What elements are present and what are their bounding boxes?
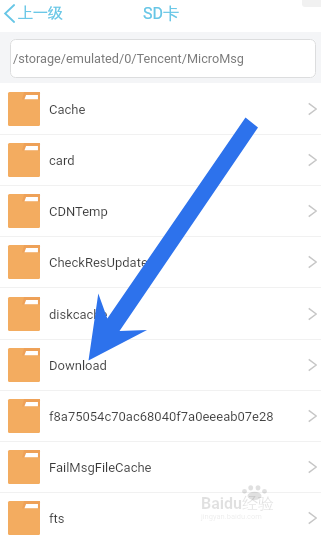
button[interactable]: fts xyxy=(0,493,321,539)
button[interactable]: 上一级 xyxy=(4,0,63,32)
staticText: fts xyxy=(49,511,308,526)
staticText: 上一级 xyxy=(18,4,63,23)
button[interactable]: /storage/emulated/0/Tencent/MicroMsg xyxy=(10,39,316,78)
staticText: Baidu经验 xyxy=(201,494,275,514)
staticText: Cache xyxy=(49,102,308,117)
button[interactable]: diskcache xyxy=(0,289,321,340)
staticText: /storage/emulated/0/Tencent/MicroMsg xyxy=(13,51,244,66)
button[interactable]: CDNTemp xyxy=(0,186,321,237)
button[interactable]: f8a75054c70ac68040f7a0eeeab07e28 xyxy=(0,391,321,442)
button[interactable]: card xyxy=(0,135,321,186)
button[interactable]: Cache xyxy=(0,84,321,135)
staticText: FailMsgFileCache xyxy=(49,460,308,475)
button[interactable]: Download xyxy=(0,340,321,391)
staticText: SD卡 xyxy=(143,4,179,24)
staticText: CDNTemp xyxy=(49,204,308,219)
staticText: Download xyxy=(49,358,308,373)
staticText: card xyxy=(49,153,308,168)
staticText: CheckResUpdate xyxy=(49,255,308,270)
staticText: f8a75054c70ac68040f7a0eeeab07e28 xyxy=(49,409,308,424)
staticText: jingyan.baidu.com xyxy=(201,512,262,521)
button[interactable]: FailMsgFileCache xyxy=(0,442,321,493)
staticText: diskcache xyxy=(49,307,308,322)
button[interactable]: CheckResUpdate xyxy=(0,237,321,288)
